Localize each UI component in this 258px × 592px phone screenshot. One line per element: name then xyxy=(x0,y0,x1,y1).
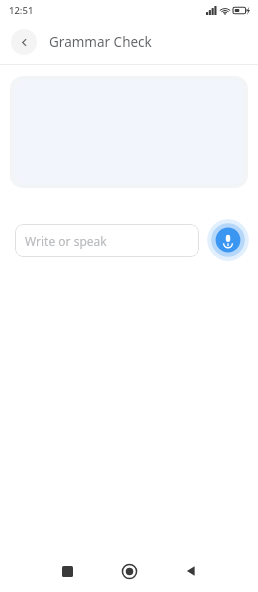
button[interactable]: Home xyxy=(108,550,150,592)
staticText: Grammar Check xyxy=(49,33,152,51)
button[interactable]: Recents xyxy=(46,550,88,592)
button[interactable]: Speak xyxy=(207,219,249,261)
staticText: Write or speak xyxy=(25,233,107,249)
button[interactable]: Back xyxy=(11,29,37,55)
button[interactable]: Back xyxy=(170,550,212,592)
staticText: 12:51 xyxy=(9,4,34,17)
button[interactable]: Write or speak xyxy=(15,224,199,257)
